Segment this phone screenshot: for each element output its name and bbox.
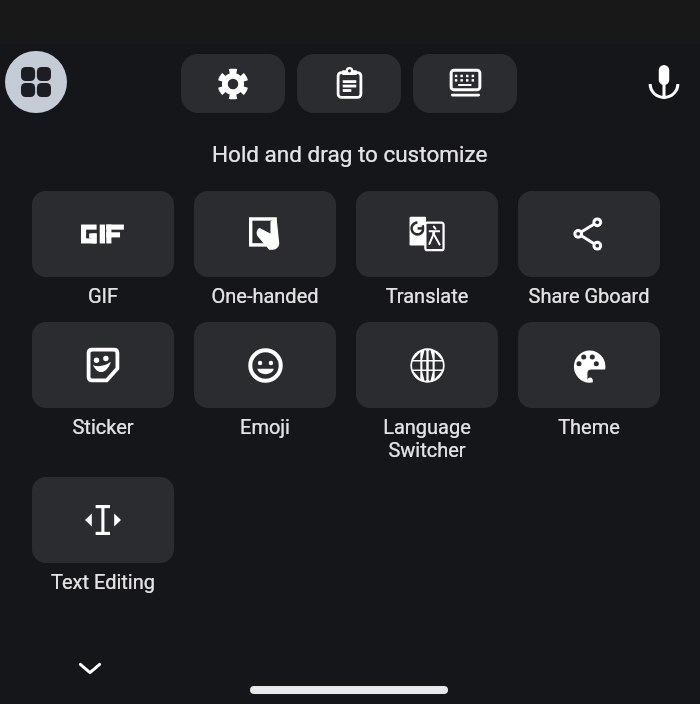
button[interactable]: Settings <box>181 54 285 113</box>
button[interactable]: Theme <box>518 322 660 438</box>
staticText: Share Gboard <box>518 284 660 307</box>
button[interactable]: Sticker <box>32 322 174 438</box>
button[interactable]: Translate <box>356 191 498 307</box>
button[interactable]: Share Gboard <box>518 191 660 307</box>
button[interactable]: All apps <box>5 51 67 113</box>
staticText: One-handed <box>194 284 336 307</box>
button[interactable]: Emoji <box>194 322 336 438</box>
staticText: Hold and drag to customize <box>212 141 488 167</box>
button[interactable]: Text Editing <box>32 477 174 593</box>
staticText: Translate <box>356 284 498 307</box>
staticText: Theme <box>518 415 660 438</box>
button[interactable]: One-handed <box>194 191 336 307</box>
staticText: Text Editing <box>32 570 174 593</box>
staticText: Sticker <box>32 415 174 438</box>
button[interactable]: Language Switcher <box>356 322 498 461</box>
button[interactable]: GIF <box>32 191 174 307</box>
button[interactable]: Voice input <box>638 55 690 107</box>
button[interactable]: Collapse keyboard <box>68 646 112 690</box>
staticText: Emoji <box>194 415 336 438</box>
staticText: Language Switcher <box>356 415 498 461</box>
button[interactable]: Clipboard <box>297 54 401 113</box>
staticText: GIF <box>32 284 174 307</box>
button[interactable]: Keyboard <box>413 54 517 113</box>
